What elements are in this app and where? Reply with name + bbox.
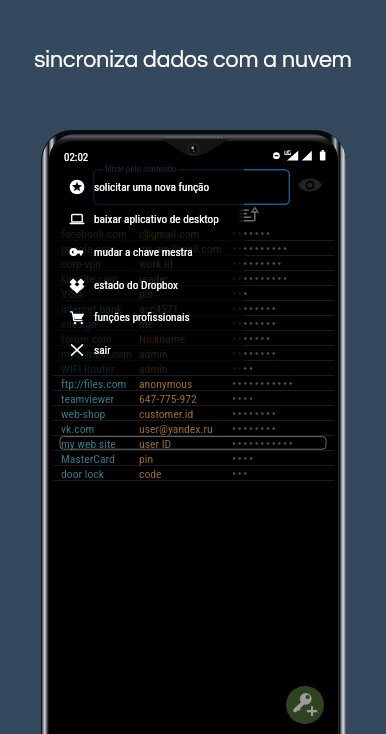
staticText: solicitar uma nova função	[94, 181, 210, 194]
staticText: internet.bank	[61, 302, 122, 316]
staticText: MasterCard	[61, 452, 115, 466]
staticText: estado do Dropbox	[94, 279, 179, 292]
staticText: door lock	[61, 467, 104, 481]
staticText: baixar aplicativo de desktop	[94, 213, 219, 226]
button[interactable]: door lock	[53, 466, 334, 481]
staticText: vk.com	[61, 422, 95, 436]
button[interactable]: forum.com	[53, 331, 334, 346]
staticText: ftp://files.com	[61, 377, 127, 391]
staticText: pin	[139, 287, 154, 301]
button[interactable]: sair	[53, 335, 238, 365]
staticText: admin	[139, 362, 168, 376]
staticText: i@gmail.com	[139, 227, 200, 241]
staticText: code	[139, 467, 162, 481]
staticText: kinolite.com	[61, 272, 118, 286]
staticText: teamviewer	[61, 392, 115, 406]
button[interactable]: solicitar uma nova função	[53, 172, 238, 202]
staticText: filtrar pelo conteúdo	[105, 164, 177, 175]
button[interactable]: google.com	[53, 241, 334, 256]
staticText: sair	[94, 344, 111, 357]
staticText: admin	[139, 347, 168, 361]
button[interactable]: vk.com	[53, 421, 334, 436]
button[interactable]: ftp://files.com	[53, 376, 334, 391]
staticText: sincroniza dados com a nuvem	[34, 48, 352, 72]
staticText: facebook.com	[61, 227, 128, 241]
button[interactable]: xdesign	[53, 316, 334, 331]
button[interactable]: WIFI Router	[53, 361, 334, 376]
button[interactable]: Sort	[239, 205, 261, 227]
button[interactable]: VISA 4672****5048	[53, 286, 334, 301]
button[interactable]: Add password	[286, 686, 324, 724]
button[interactable]: my web site	[53, 436, 334, 451]
staticText: mudar a chave mestra	[94, 246, 193, 259]
button[interactable]: kinolite.com	[53, 271, 334, 286]
staticText: corp-vpn	[61, 257, 101, 271]
staticText: WIFI Router	[61, 362, 115, 376]
staticText: user@yandex.ru	[139, 422, 213, 436]
staticText: pin	[139, 452, 154, 466]
staticText: acc4571	[139, 302, 179, 316]
staticText: customer.id	[139, 407, 194, 421]
button[interactable]: baixar aplicativo de desktop	[53, 204, 238, 234]
staticText: my web site	[61, 437, 116, 451]
staticText: 647-775-972	[139, 392, 197, 406]
button[interactable]: estado do Dropbox	[53, 270, 238, 300]
staticText: google.com	[61, 242, 116, 256]
staticText: Nickname	[139, 332, 186, 346]
staticText: me	[139, 317, 154, 331]
staticText: mydomain.com	[61, 347, 133, 361]
button[interactable]: Show passwords	[297, 172, 323, 198]
button[interactable]: web-shop	[53, 406, 334, 421]
button[interactable]: internet.bank	[53, 301, 334, 316]
staticText: web-shop	[61, 407, 106, 421]
staticText: user ID	[139, 437, 172, 451]
staticText: 02:02	[64, 151, 89, 164]
staticText: VISA 4672****5048	[61, 287, 147, 301]
staticText: anonymous	[139, 377, 193, 391]
staticText: funções profissionais	[94, 311, 190, 324]
button[interactable]: corp-vpn	[53, 256, 334, 271]
staticText: forum.com	[61, 332, 112, 346]
button[interactable]: mydomain.com	[53, 346, 334, 361]
button[interactable]: mudar a chave mestra	[53, 237, 238, 267]
staticText: xdesign	[61, 317, 97, 331]
button[interactable]: facebook.com	[53, 226, 334, 241]
staticText: my.am@mail.com	[139, 242, 222, 256]
button[interactable]: filtrar pelo conteúdo	[93, 169, 290, 205]
button[interactable]: funções profissionais	[53, 302, 238, 332]
button[interactable]: MasterCard	[53, 451, 334, 466]
staticText: reader	[139, 272, 169, 286]
button[interactable]: teamviewer	[53, 391, 334, 406]
staticText: work.id	[139, 257, 173, 271]
